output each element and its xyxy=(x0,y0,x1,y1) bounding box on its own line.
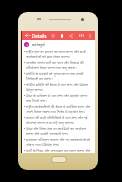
staticText: सदस्यता अभियान चलाना और नए कार्यकर्ताओं … xyxy=(26,137,93,147)
button[interactable]: Text size xyxy=(77,31,85,40)
button[interactable]: Share xyxy=(67,31,75,40)
staticText: राष्ट्रीय कार्यकारिणी की बैठक में उपस्थि… xyxy=(26,104,93,114)
button[interactable]: Details xyxy=(32,31,47,40)
button[interactable]: Copy xyxy=(58,31,66,40)
button[interactable]: Favourite xyxy=(49,31,57,40)
button[interactable]: महत्वपूर्ण xyxy=(21,40,95,48)
staticText: Details xyxy=(32,33,47,39)
staticText: प्रदेश के सम्मेलन में भाग लेना और सहयोग … xyxy=(26,93,93,103)
button[interactable]: Back xyxy=(23,31,31,40)
staticText: केन्द्रीय समिति की बैठक में भाग लेना और … xyxy=(26,82,93,92)
button[interactable]: Home xyxy=(51,156,67,163)
staticText: भारतीय जनता पार्टी का गठन और विकास की पर… xyxy=(26,60,93,70)
staticText: समिति के सदस्यों को चुनाव करना तथा उनकी … xyxy=(26,71,93,81)
staticText: संगठन की सभी गतिविधियों में भाग लेना और … xyxy=(26,115,93,125)
staticText: राष्ट्रीय स्तर पर संगठन का काम करना और स… xyxy=(26,49,93,59)
staticText: पार्टी के नियम और अनुशासन का पालन करना औ… xyxy=(26,148,93,152)
button[interactable]: More options xyxy=(86,31,94,40)
staticText: प्रदेश और जिला स्तर पर कार्यक्रमों का आय… xyxy=(26,126,93,136)
staticText: महत्वपूर्ण xyxy=(32,42,45,47)
